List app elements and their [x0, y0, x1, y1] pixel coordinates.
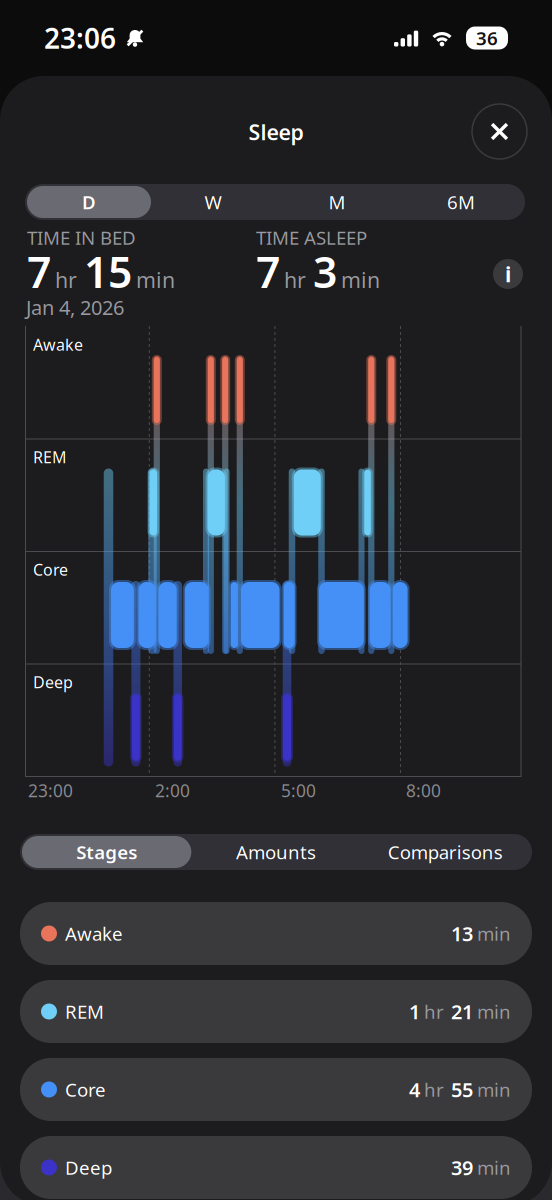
staticText: TIME IN BED: [27, 225, 136, 250]
staticText: min: [477, 1077, 511, 1102]
staticText: Core: [65, 1077, 106, 1102]
staticText: 7: [256, 243, 280, 300]
staticText: 39: [451, 1154, 473, 1181]
staticText: min: [477, 999, 511, 1024]
staticText: 3: [313, 243, 337, 300]
staticText: Awake: [65, 921, 123, 946]
staticText: Awake: [33, 334, 83, 355]
staticText: 1: [409, 998, 420, 1025]
staticText: 5:00: [281, 779, 316, 802]
staticText: W: [204, 190, 221, 214]
staticText: Stages: [76, 840, 137, 864]
staticText: 23:00: [28, 779, 73, 802]
staticText: 21: [451, 998, 473, 1025]
staticText: 23:06: [44, 19, 116, 57]
button[interactable]: Core: [20, 1058, 532, 1121]
staticText: D: [82, 190, 96, 214]
staticText: Deep: [65, 1155, 112, 1180]
button[interactable]: Close: [472, 104, 527, 159]
staticText: Sleep: [248, 118, 303, 146]
button[interactable]: About sleep data: [493, 259, 523, 289]
staticText: 15: [84, 243, 132, 300]
staticText: 6M: [447, 190, 475, 214]
staticText: REM: [65, 999, 104, 1024]
staticText: min: [341, 265, 380, 294]
staticText: 36: [476, 26, 498, 50]
button[interactable]: Comparisons: [361, 836, 530, 868]
staticText: min: [477, 1155, 511, 1180]
button[interactable]: Stages: [22, 836, 191, 868]
staticText: hr: [55, 265, 77, 294]
staticText: Comparisons: [388, 840, 503, 864]
staticText: REM: [33, 446, 67, 468]
button[interactable]: D: [27, 186, 151, 218]
staticText: 2:00: [155, 779, 190, 802]
button[interactable]: Amounts: [191, 836, 361, 868]
button[interactable]: W: [151, 186, 275, 218]
staticText: Deep: [33, 671, 73, 693]
button[interactable]: Awake: [20, 902, 532, 965]
staticText: 7: [27, 243, 51, 300]
staticText: 55: [451, 1076, 473, 1103]
staticText: Jan 4, 2026: [26, 294, 124, 321]
button[interactable]: REM: [20, 980, 532, 1043]
button[interactable]: Deep: [20, 1136, 532, 1199]
staticText: hr: [424, 999, 444, 1024]
staticText: hr: [284, 265, 306, 294]
button[interactable]: M: [275, 186, 399, 218]
staticText: min: [477, 921, 511, 946]
staticText: Amounts: [236, 840, 316, 864]
staticText: M: [328, 190, 345, 214]
staticText: min: [136, 265, 175, 294]
staticText: 13: [451, 920, 473, 947]
button[interactable]: 6M: [399, 186, 523, 218]
staticText: TIME ASLEEP: [256, 225, 367, 250]
staticText: i: [505, 260, 511, 288]
staticText: 8:00: [406, 779, 441, 802]
staticText: hr: [424, 1077, 444, 1102]
staticText: Core: [33, 559, 68, 580]
staticText: 4: [409, 1076, 420, 1103]
